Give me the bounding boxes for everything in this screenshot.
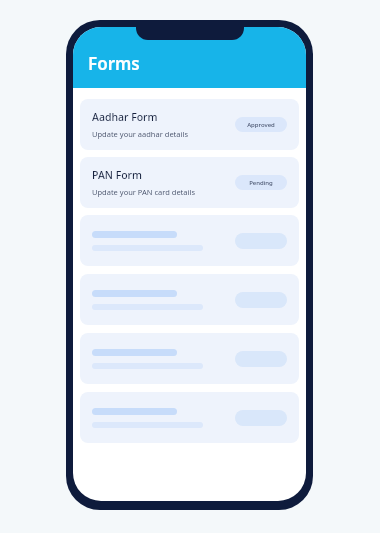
staticText: Forms (88, 52, 140, 75)
staticText: Approved (247, 121, 275, 129)
button[interactable]: PAN Form (80, 157, 299, 208)
staticText: Pending (249, 179, 273, 187)
staticText: Update your PAN card details (92, 187, 195, 197)
button[interactable]: Loading form (80, 274, 299, 325)
button[interactable]: Approved (235, 117, 287, 132)
staticText: Aadhar Form (92, 110, 158, 124)
button[interactable]: Pending (235, 175, 287, 190)
staticText: PAN Form (92, 168, 142, 182)
button[interactable]: Loading form (80, 392, 299, 443)
staticText: Update your aadhar details (92, 129, 188, 139)
button[interactable]: Aadhar Form (80, 99, 299, 150)
button[interactable]: Loading form (80, 333, 299, 384)
button[interactable]: Loading form (80, 215, 299, 266)
